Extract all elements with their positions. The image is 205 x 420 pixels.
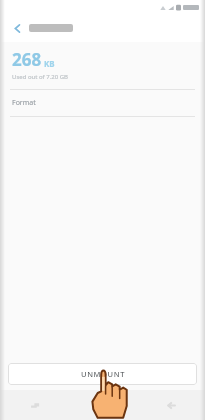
staticText: Format xyxy=(12,98,36,108)
staticText: 268 xyxy=(12,48,42,71)
staticText: KB xyxy=(44,58,55,69)
button[interactable]: Format xyxy=(0,90,205,116)
button[interactable]: Back xyxy=(137,390,205,420)
staticText: Used out of 7.20 GB xyxy=(12,73,68,81)
button[interactable]: Home xyxy=(69,390,137,420)
button[interactable]: Recent apps xyxy=(0,390,69,420)
button[interactable]: UNMOUNT xyxy=(8,363,197,385)
button[interactable]: Navigate up xyxy=(6,17,28,39)
staticText: UNMOUNT xyxy=(81,369,125,379)
